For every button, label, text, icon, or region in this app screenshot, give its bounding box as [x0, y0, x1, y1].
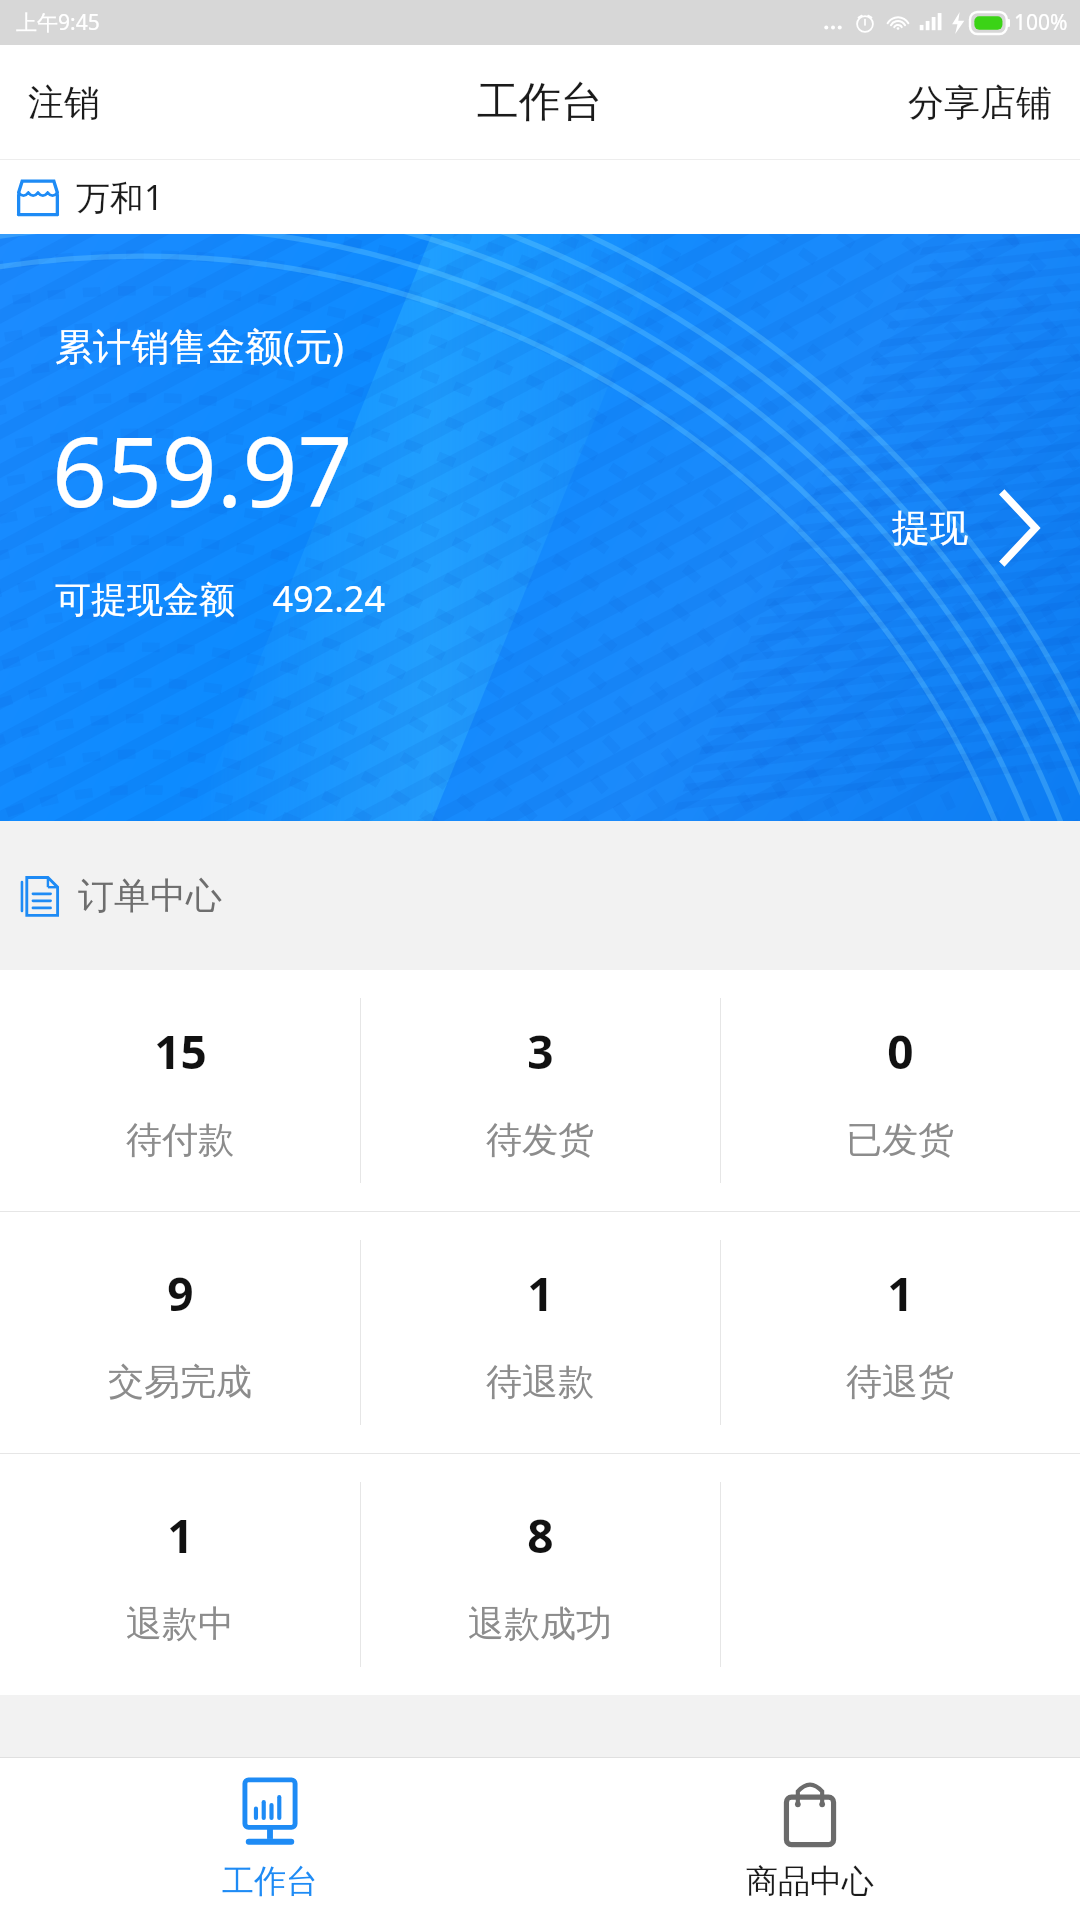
button[interactable]: 万和1: [0, 160, 1080, 234]
staticText: 待退款: [486, 1359, 594, 1404]
staticText: 已发货: [846, 1117, 954, 1162]
button[interactable]: 1: [720, 1212, 1080, 1453]
button[interactable]: 提现: [884, 474, 1050, 582]
staticText: 商品中心: [746, 1861, 874, 1901]
button[interactable]: 9: [0, 1212, 360, 1453]
staticText: 1: [887, 1262, 914, 1325]
staticText: 分享店铺: [908, 80, 1052, 125]
staticText: 15: [154, 1020, 207, 1083]
staticText: 9: [167, 1262, 194, 1325]
button[interactable]: 1: [360, 1212, 720, 1453]
button[interactable]: 3: [360, 970, 720, 1211]
button[interactable]: 工作台: [0, 1758, 540, 1920]
staticText: 工作台: [222, 1861, 318, 1901]
staticText: 可提现金额 492.24: [55, 574, 386, 623]
staticText: 1: [167, 1504, 194, 1567]
staticText: 注销: [28, 80, 100, 125]
staticText: 提现: [892, 504, 968, 552]
staticText: 0: [887, 1020, 914, 1083]
staticText: 工作台: [477, 76, 603, 129]
staticText: 待发货: [486, 1117, 594, 1162]
button[interactable]: 0: [720, 970, 1080, 1211]
staticText: 待退货: [846, 1359, 954, 1404]
staticText: 退款中: [126, 1601, 234, 1646]
staticText: 累计销售金额(元): [55, 319, 344, 371]
other: 商品中心: [772, 1777, 848, 1849]
staticText: 上午9:45: [16, 8, 100, 37]
button[interactable]: 8: [360, 1454, 720, 1695]
staticText: 3: [527, 1020, 554, 1083]
staticText: 交易完成: [108, 1359, 252, 1404]
staticText: 订单中心: [78, 873, 222, 918]
staticText: 100%: [1014, 8, 1068, 37]
button[interactable]: 15: [0, 970, 360, 1211]
button[interactable]: 商品中心: [540, 1758, 1080, 1920]
staticText: 待付款: [126, 1117, 234, 1162]
staticText: 万和1: [76, 174, 164, 220]
staticText: 8: [527, 1504, 554, 1567]
staticText: 退款成功: [468, 1601, 612, 1646]
staticText: 659.97: [52, 404, 353, 535]
staticText: 1: [527, 1262, 554, 1325]
button[interactable]: 分享店铺: [880, 60, 1080, 145]
other: 工作台: [232, 1777, 308, 1849]
button[interactable]: 1: [0, 1454, 360, 1695]
button[interactable]: 注销: [0, 60, 128, 145]
